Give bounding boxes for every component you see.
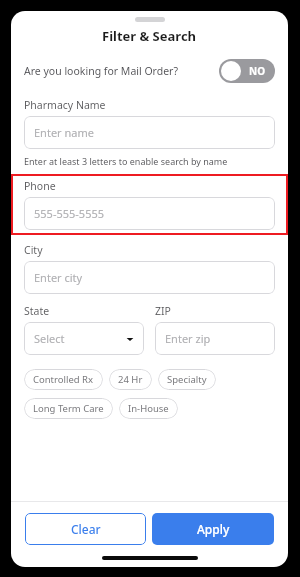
button[interactable]: Enter city [24, 261, 275, 294]
staticText: Enter at least 3 letters to enable searc… [24, 155, 228, 167]
button[interactable]: Long Term Care [24, 398, 113, 419]
button[interactable]: Apply [152, 513, 274, 545]
other: Open state dropdown [34, 322, 134, 355]
button[interactable]: In-House [119, 398, 178, 419]
staticText: Enter city [34, 270, 83, 285]
staticText: 24 Hr [118, 373, 143, 386]
button[interactable]: Mail order toggle, currently NO [219, 59, 275, 83]
staticText: State [24, 304, 50, 318]
staticText: Controlled Rx [33, 373, 94, 386]
staticText: Enter zip [165, 331, 211, 346]
button[interactable]: 24 Hr [109, 369, 152, 390]
button[interactable]: Select [24, 322, 144, 355]
staticText: Pharmacy Name [24, 98, 106, 112]
button[interactable]: Enter name [24, 116, 275, 149]
staticText: 555-555-5555 [34, 206, 105, 221]
button[interactable]: Specialty [158, 369, 216, 390]
button[interactable]: Clear [25, 513, 146, 545]
staticText: Specialty [167, 373, 207, 386]
staticText: Apply [197, 521, 230, 537]
staticText: Phone [24, 179, 56, 193]
staticText: NO [249, 64, 266, 78]
staticText: In-House [128, 402, 169, 415]
staticText: Filter & Search [102, 27, 197, 45]
staticText: Enter name [34, 125, 94, 140]
staticText: City [24, 243, 43, 257]
button[interactable]: Controlled Rx [24, 369, 103, 390]
button[interactable]: Enter zip [155, 322, 275, 355]
staticText: Are you looking for Mail Order? [24, 64, 179, 78]
staticText: Select [34, 331, 65, 346]
staticText: ZIP [155, 304, 171, 318]
button[interactable]: 555-555-5555 [24, 197, 275, 230]
staticText: Long Term Care [33, 402, 104, 415]
staticText: Clear [71, 521, 101, 537]
